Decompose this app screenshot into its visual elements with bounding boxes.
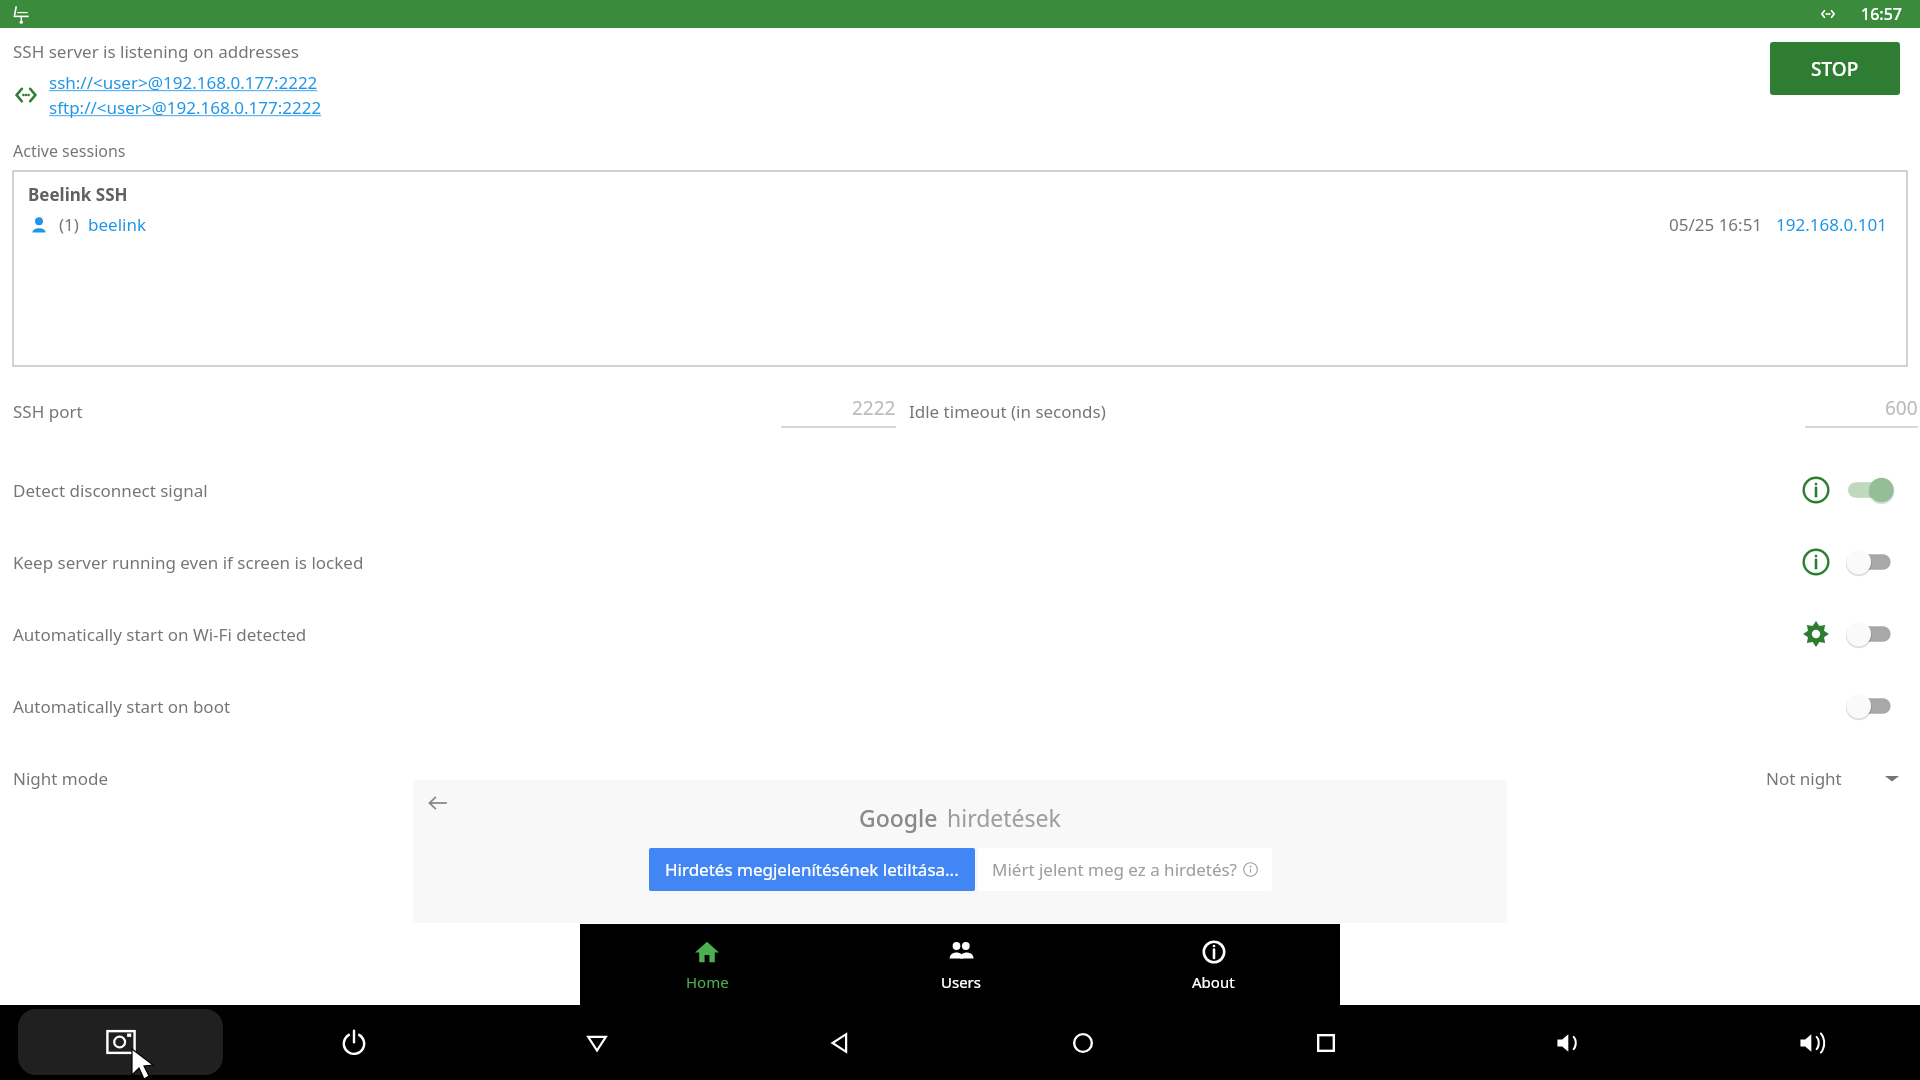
button[interactable]: 2222 xyxy=(781,395,896,428)
staticText: Home xyxy=(686,972,729,992)
button[interactable]: Night mode xyxy=(0,742,1920,814)
button[interactable]: Detect disconnect signal xyxy=(0,454,1920,526)
staticText: Detect disconnect signal xyxy=(13,479,208,502)
button[interactable]: Power xyxy=(324,1013,384,1073)
button[interactable]: About xyxy=(1087,924,1340,1005)
staticText: Automatically start on boot xyxy=(13,695,231,718)
staticText: Idle timeout (in seconds) xyxy=(909,400,1106,423)
staticText: Keep server running even if screen is lo… xyxy=(13,551,364,574)
staticText: 05/25 16:51 xyxy=(1669,213,1763,236)
staticText: 192.168.0.101 xyxy=(1776,213,1887,236)
button[interactable]: Hirdetés megjelenítésének letiltása... xyxy=(649,848,975,891)
button[interactable]: Miért jelent meg ez a hirdetés? xyxy=(978,848,1272,891)
staticText: hirdetések xyxy=(947,802,1061,833)
button[interactable]: 600 xyxy=(1805,395,1918,428)
other: Network xyxy=(13,82,39,108)
button[interactable]: Automatically start on Wi-Fi detected xyxy=(0,598,1920,670)
staticText: SSH server is listening on addresses xyxy=(13,40,299,63)
button[interactable]: Recents xyxy=(1296,1013,1356,1073)
staticText: 16:57 xyxy=(1861,3,1902,25)
button[interactable]: Info xyxy=(1798,472,1834,508)
button[interactable]: Home xyxy=(1053,1013,1113,1073)
button[interactable]: Automatically start on boot xyxy=(0,670,1920,742)
button[interactable]: Keep server running even if screen is lo… xyxy=(0,526,1920,598)
button[interactable]: Down xyxy=(567,1013,627,1073)
button[interactable]: (1) xyxy=(28,213,146,236)
staticText: ssh://<user>@192.168.0.177:2222 xyxy=(49,71,322,94)
staticText: (1) xyxy=(59,213,79,236)
button[interactable]: STOP xyxy=(1770,42,1900,95)
staticText: SSH port xyxy=(13,400,83,423)
staticText: Night mode xyxy=(13,767,109,790)
button[interactable]: Off xyxy=(1848,545,1900,579)
button[interactable]: Info xyxy=(1798,544,1834,580)
staticText: STOP xyxy=(1811,56,1859,82)
button[interactable]: Settings xyxy=(1798,616,1834,652)
button[interactable]: On xyxy=(1848,473,1900,507)
staticText: Hirdetés megjelenítésének letiltása... xyxy=(665,858,959,881)
staticText: Not night xyxy=(1766,767,1842,790)
staticText: beelink xyxy=(88,213,146,236)
staticText: sftp://<user>@192.168.0.177:2222 xyxy=(49,96,322,119)
button[interactable]: 192.168.0.101 xyxy=(1776,213,1887,236)
staticText: About xyxy=(1192,972,1235,992)
staticText: Automatically start on Wi-Fi detected xyxy=(13,623,307,646)
staticText: Users xyxy=(941,972,981,992)
button[interactable]: Off xyxy=(1848,617,1900,651)
button[interactable]: Screenshot xyxy=(18,1009,223,1075)
staticText: 2222 xyxy=(852,395,896,421)
button[interactable]: ssh://<user>@192.168.0.177:2222 xyxy=(49,71,322,94)
staticText: Beelink SSH xyxy=(28,183,128,206)
button[interactable]: Users xyxy=(834,924,1087,1005)
staticText: Active sessions xyxy=(13,140,126,162)
staticText: 600 xyxy=(1885,395,1918,421)
button[interactable]: Off xyxy=(1848,689,1900,723)
button[interactable]: Home xyxy=(580,924,834,1005)
button[interactable]: Back xyxy=(425,790,451,816)
staticText: Google xyxy=(859,802,938,833)
button[interactable]: sftp://<user>@192.168.0.177:2222 xyxy=(49,96,322,119)
staticText: Miért jelent meg ez a hirdetés? xyxy=(992,858,1237,881)
button[interactable]: Volume up xyxy=(1782,1013,1842,1073)
button[interactable]: Volume down xyxy=(1539,1013,1599,1073)
button[interactable]: Back xyxy=(810,1013,870,1073)
